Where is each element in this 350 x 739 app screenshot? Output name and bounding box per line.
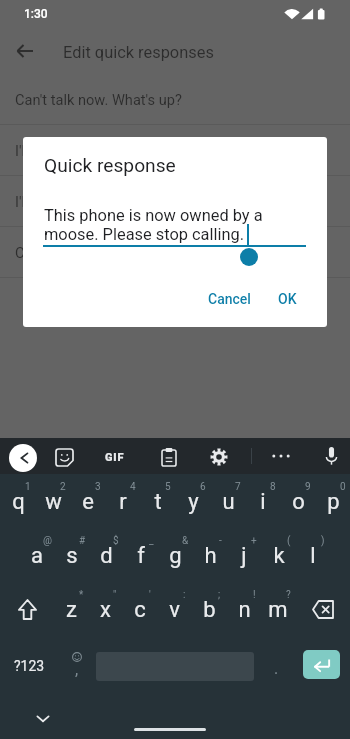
staticText: 1 bbox=[25, 481, 31, 493]
staticText: ! bbox=[253, 589, 256, 601]
staticText: l bbox=[310, 543, 316, 569]
staticText: a bbox=[31, 543, 43, 569]
button[interactable]: Stickers bbox=[56, 449, 73, 466]
staticText: 5 bbox=[165, 481, 171, 493]
button[interactable]: l bbox=[296, 528, 330, 582]
button[interactable]: y bbox=[176, 474, 210, 528]
button[interactable]: s bbox=[55, 528, 89, 582]
button[interactable]: f bbox=[124, 528, 158, 582]
staticText: 0 bbox=[340, 481, 346, 493]
button[interactable]: Can't talk now. What's up? bbox=[0, 74, 350, 125]
staticText: Edit quick responses bbox=[63, 43, 214, 62]
staticText: u bbox=[222, 489, 235, 515]
staticText: k bbox=[273, 543, 285, 569]
staticText: 6 bbox=[200, 481, 206, 493]
staticText: ( bbox=[287, 535, 291, 547]
staticText: 2 bbox=[60, 481, 66, 493]
button[interactable]: g bbox=[158, 528, 192, 582]
button[interactable]: m bbox=[261, 582, 295, 636]
staticText: Cancel bbox=[208, 291, 251, 307]
staticText: I'll call you later. bbox=[15, 193, 118, 210]
button[interactable]: i bbox=[246, 474, 280, 528]
staticText: q bbox=[12, 489, 25, 515]
button[interactable]: u bbox=[211, 474, 245, 528]
button[interactable]: Voice input bbox=[324, 447, 339, 466]
button[interactable]: j bbox=[227, 528, 261, 582]
staticText: j bbox=[241, 543, 247, 569]
staticText: @ bbox=[43, 535, 52, 547]
button[interactable]: k bbox=[262, 528, 296, 582]
button[interactable]: Clipboard bbox=[162, 448, 176, 466]
staticText: * bbox=[79, 589, 84, 601]
button[interactable]: I'll call you later. bbox=[0, 176, 350, 227]
staticText: , bbox=[75, 660, 79, 679]
staticText: i bbox=[260, 489, 266, 515]
button[interactable]: z bbox=[54, 582, 88, 636]
staticText: Can't talk now. What's up? bbox=[15, 91, 182, 108]
button[interactable]: Hide keyboard bbox=[33, 708, 53, 728]
button[interactable]: q bbox=[1, 474, 35, 528]
button[interactable]: Enter bbox=[303, 650, 340, 679]
staticText: This phone is now owned by a moose. Plea… bbox=[44, 206, 263, 244]
staticText: c bbox=[134, 597, 146, 623]
button[interactable]: Comma bbox=[58, 636, 96, 690]
button[interactable]: Cancel bbox=[200, 282, 259, 316]
button[interactable]: o bbox=[281, 474, 315, 528]
button[interactable]: v bbox=[157, 582, 191, 636]
button[interactable]: Backspace bbox=[300, 582, 345, 636]
staticText: 9 bbox=[305, 481, 311, 493]
staticText: OK bbox=[278, 291, 297, 307]
staticText: v bbox=[169, 597, 180, 623]
staticText: s bbox=[66, 543, 78, 569]
button[interactable]: b bbox=[192, 582, 226, 636]
staticText: Can't talk now. Call me later? bbox=[15, 244, 201, 261]
button[interactable]: Can't talk now. Call me later? bbox=[0, 227, 350, 278]
staticText: t bbox=[154, 489, 162, 515]
staticText: w bbox=[45, 489, 62, 515]
staticText: 1:30 bbox=[24, 7, 48, 21]
staticText: h bbox=[204, 543, 217, 569]
staticText: I'll call you right back. bbox=[15, 142, 154, 159]
staticText: z bbox=[66, 597, 77, 623]
button[interactable]: p bbox=[316, 474, 350, 528]
button[interactable]: Settings bbox=[210, 448, 228, 466]
button[interactable]: GIF bbox=[105, 451, 125, 464]
button[interactable]: c bbox=[123, 582, 157, 636]
button[interactable]: n bbox=[227, 582, 261, 636]
button[interactable]: Back bbox=[9, 444, 37, 472]
staticText: & bbox=[182, 535, 189, 547]
button[interactable]: a bbox=[20, 528, 54, 582]
staticText: 8 bbox=[270, 481, 276, 493]
staticText: e bbox=[82, 489, 94, 515]
button[interactable]: r bbox=[106, 474, 140, 528]
staticText: 4 bbox=[130, 481, 136, 493]
staticText: y bbox=[188, 489, 199, 515]
button[interactable]: w bbox=[36, 474, 70, 528]
staticText: # bbox=[79, 535, 86, 547]
staticText: o bbox=[292, 489, 305, 515]
staticText: m bbox=[268, 597, 288, 623]
staticText: - bbox=[219, 535, 222, 547]
button[interactable]: I'll call you right back. bbox=[0, 125, 350, 176]
staticText: + bbox=[251, 535, 257, 547]
staticText: : bbox=[183, 589, 186, 601]
button[interactable]: t bbox=[141, 474, 175, 528]
button[interactable]: More options bbox=[272, 450, 290, 462]
button[interactable]: h bbox=[193, 528, 227, 582]
button[interactable]: OK bbox=[270, 282, 305, 316]
button[interactable]: d bbox=[89, 528, 123, 582]
button[interactable]: x bbox=[88, 582, 122, 636]
staticText: . bbox=[274, 659, 279, 678]
staticText: g bbox=[169, 543, 182, 569]
button[interactable]: e bbox=[71, 474, 105, 528]
staticText: n bbox=[238, 597, 251, 623]
staticText: b bbox=[203, 597, 216, 623]
staticText: $ bbox=[113, 535, 119, 547]
staticText: " bbox=[113, 589, 117, 601]
button[interactable]: ?123 bbox=[0, 636, 58, 690]
button[interactable]: Shift bbox=[5, 582, 50, 636]
staticText: ; bbox=[218, 589, 221, 601]
button[interactable]: Back bbox=[13, 39, 37, 63]
